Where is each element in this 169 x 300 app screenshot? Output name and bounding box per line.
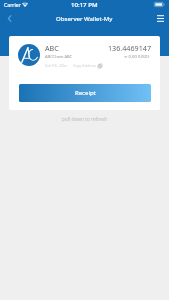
staticText: 136.4469147 [108,43,152,53]
staticText: pull down to refresh [0,116,169,123]
button[interactable]: Menu [152,10,168,26]
button[interactable]: Receipt [19,84,151,102]
staticText: Copy Address [73,63,96,68]
staticText: ABCChain ABC [45,54,73,59]
button[interactable] [9,36,160,80]
staticText: ≈ 0.00 (USD) [124,54,149,60]
staticText: Carrier [4,1,21,8]
staticText: ABC [45,43,59,53]
staticText: 10:17 PM [71,0,98,8]
staticText: 0xb1f3...29ac [45,63,68,68]
staticText: Observer Wallet-My [56,14,113,22]
staticText: Receipt [75,89,96,97]
button[interactable]: Back [1,10,17,26]
